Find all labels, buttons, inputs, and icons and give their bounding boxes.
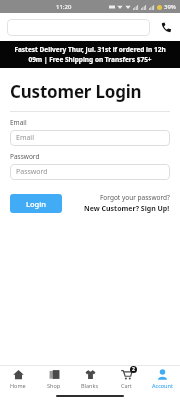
button[interactable]: Password <box>10 164 170 180</box>
staticText: 09m | Free Shipping on Transfers $75+ <box>28 55 152 64</box>
staticText: New Customer? Sign Up! <box>84 204 170 214</box>
staticText: Shop <box>47 382 61 389</box>
button[interactable] <box>7 19 150 36</box>
staticText: Blanks <box>81 382 99 389</box>
staticText: Home <box>10 382 26 389</box>
button[interactable]: Home <box>0 366 36 392</box>
staticText: Email <box>10 118 27 127</box>
button[interactable]: Shop <box>36 366 72 392</box>
staticText: 39% <box>164 3 176 11</box>
staticText: Password <box>10 152 40 161</box>
staticText: Email <box>16 133 34 143</box>
staticText: Login <box>26 199 46 209</box>
button[interactable]: New Customer? Sign Up! <box>84 204 170 214</box>
button[interactable]: Login <box>10 194 62 213</box>
staticText: Cart <box>121 382 132 389</box>
staticText: Fastest Delivery Thur, Jul. 31st if orde… <box>14 45 166 54</box>
staticText: Customer Login <box>10 80 142 103</box>
button[interactable]: Call <box>157 18 175 36</box>
button[interactable]: Email <box>10 130 170 146</box>
button[interactable]: Account <box>144 366 180 392</box>
staticText: 2 <box>132 366 135 373</box>
staticText: 11:20 <box>56 3 72 11</box>
button[interactable]: 2 <box>108 366 144 392</box>
staticText: Password <box>16 167 48 177</box>
button[interactable]: Blanks <box>72 366 108 392</box>
button[interactable]: Forgot your password? <box>100 193 170 202</box>
staticText: Account <box>152 382 173 389</box>
staticText: Forgot your password? <box>100 193 170 202</box>
